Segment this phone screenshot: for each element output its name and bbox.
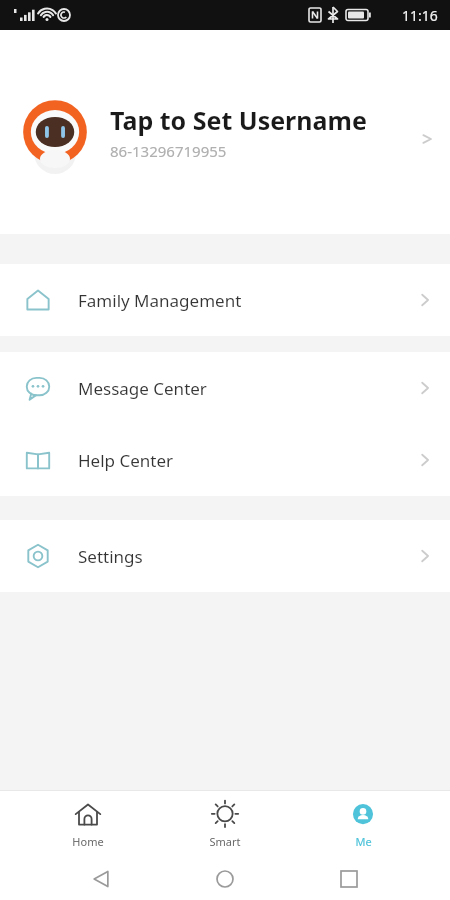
button[interactable]: Help Center	[0, 424, 450, 496]
staticText: 11:16	[402, 6, 438, 25]
staticText: Help Center	[78, 449, 418, 472]
button[interactable]: Settings	[0, 520, 450, 592]
staticText: Message Center	[78, 377, 418, 400]
button[interactable]: Family Management	[0, 264, 450, 336]
button[interactable]: Back	[78, 858, 124, 900]
button[interactable]: Me	[313, 794, 413, 855]
staticText: Smart	[209, 834, 241, 849]
staticText: Family Management	[78, 289, 418, 312]
staticText: Me	[355, 834, 372, 849]
button[interactable]: Tap to Set Username	[0, 30, 450, 234]
staticText: Tap to Set Username	[110, 103, 367, 137]
staticText: Settings	[78, 545, 418, 568]
button[interactable]: Recents	[326, 858, 372, 900]
staticText: 86-13296719955	[110, 141, 227, 161]
button[interactable]: Smart	[175, 794, 275, 855]
button[interactable]: Home	[38, 794, 138, 855]
button[interactable]: Message Center	[0, 352, 450, 424]
button[interactable]: Home	[202, 858, 248, 900]
staticText: Home	[72, 834, 104, 849]
